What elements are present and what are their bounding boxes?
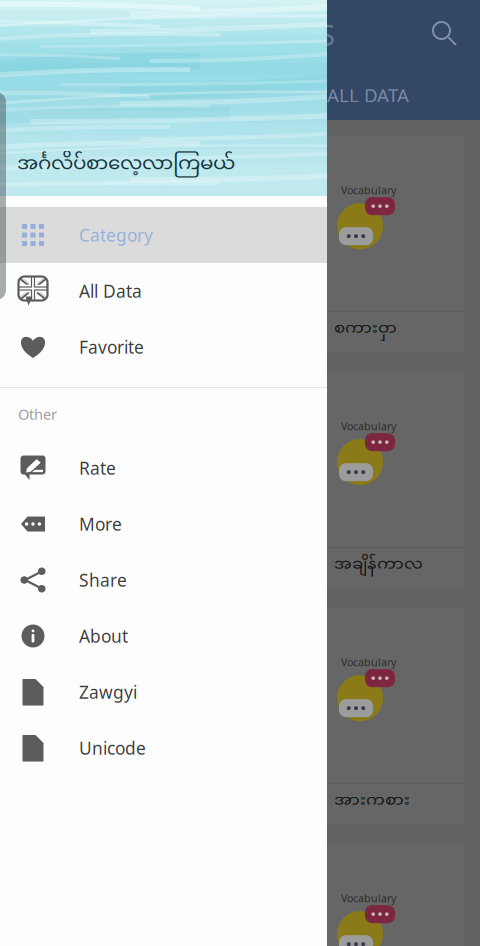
button[interactable]: About xyxy=(0,608,327,664)
staticText: All Data xyxy=(79,279,142,302)
button[interactable]: Zawgyi xyxy=(0,664,327,720)
staticText: စကားဝှာ xyxy=(334,318,397,341)
staticText: Vocabulary xyxy=(341,891,396,905)
staticText: Category xyxy=(79,223,153,246)
staticText: Other xyxy=(18,404,57,424)
staticText: Rate xyxy=(79,456,116,479)
staticText: Favorite xyxy=(79,335,144,358)
button[interactable]: All Data xyxy=(0,263,327,319)
button[interactable]: Rate xyxy=(0,440,327,496)
button[interactable]: Search xyxy=(421,10,469,58)
button[interactable]: Vocabulary xyxy=(16,136,464,352)
button[interactable]: Vocabulary xyxy=(16,608,464,824)
button[interactable]: Share xyxy=(0,552,327,608)
button[interactable]: Favorite xyxy=(0,319,327,375)
button[interactable]: Vocabulary xyxy=(16,372,464,588)
staticText: Vocabulary xyxy=(341,183,396,197)
staticText: Zawgyi xyxy=(79,680,137,703)
staticText: Share xyxy=(79,568,127,591)
staticText: အချိန်ကာလ xyxy=(334,554,423,577)
staticText: ENGLISH WORDS xyxy=(100,15,335,45)
button[interactable]: Category xyxy=(0,207,327,263)
button[interactable]: More xyxy=(0,496,327,552)
button[interactable]: ALL DATA xyxy=(327,72,480,118)
button[interactable]: CATEGORY xyxy=(112,72,292,118)
staticText: Vocabulary xyxy=(341,655,396,669)
staticText: Vocabulary xyxy=(341,419,396,433)
staticText: More xyxy=(79,512,122,535)
button[interactable]: Unicode xyxy=(0,720,327,776)
staticText: CATEGORY xyxy=(112,83,207,107)
staticText: ALL DATA xyxy=(327,83,409,107)
staticText: အင်္ဂလိပ်စာလေ့လာကြမယ် xyxy=(17,151,235,178)
staticText: အားကစား xyxy=(334,790,410,813)
staticText: Unicode xyxy=(79,736,146,759)
staticText: About xyxy=(79,624,128,647)
button[interactable]: Vocabulary xyxy=(16,844,464,946)
